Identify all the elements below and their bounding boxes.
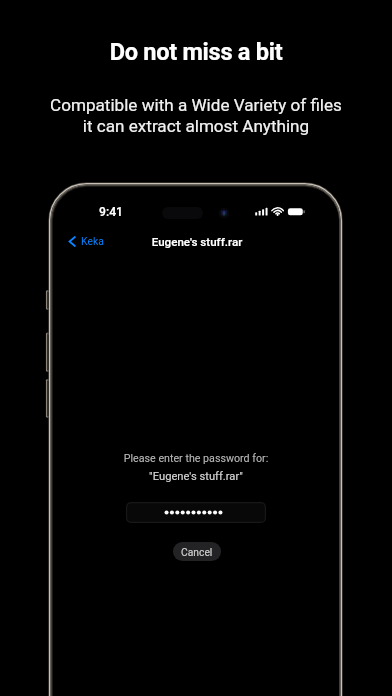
staticText: "Eugene's stuff.rar" bbox=[53, 470, 339, 483]
button[interactable]: Cancel bbox=[173, 542, 221, 561]
staticText: Keka bbox=[81, 235, 104, 247]
staticText: Please enter the password for: bbox=[53, 452, 339, 465]
staticText: Compatible with a Wide Variety of files … bbox=[0, 95, 392, 136]
button[interactable]: Keka bbox=[68, 231, 104, 251]
staticText: Cancel bbox=[181, 546, 213, 558]
staticText: Do not miss a bit bbox=[0, 38, 392, 66]
staticText: 9:41 bbox=[99, 205, 124, 219]
staticText: Eugene's stuff.rar bbox=[54, 235, 339, 249]
button[interactable] bbox=[126, 502, 266, 523]
